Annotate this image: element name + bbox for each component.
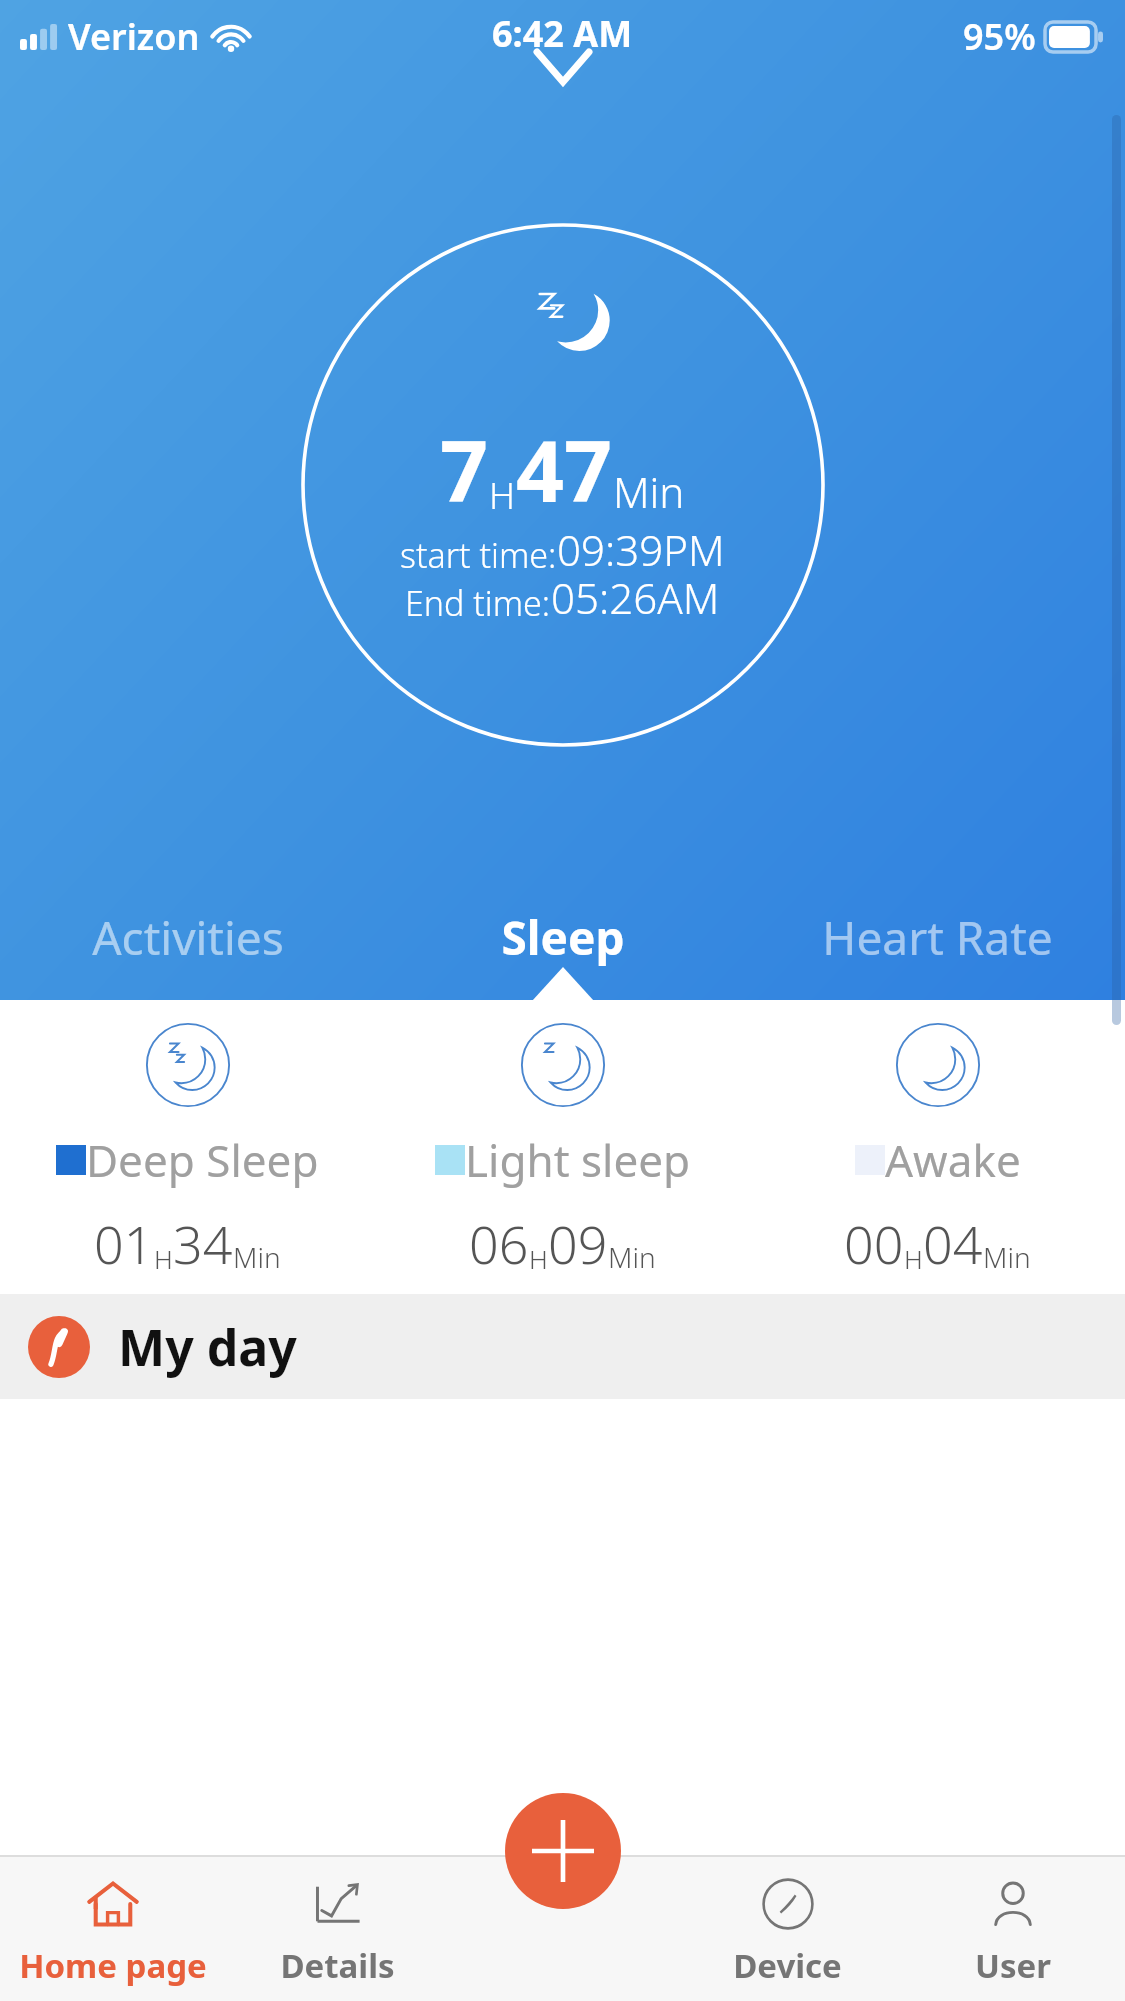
staticText: Sleep (501, 906, 625, 969)
staticText: Awake (885, 1130, 1021, 1190)
staticText: Device (733, 1943, 842, 1988)
staticText: 7 (440, 412, 489, 526)
button[interactable]: Awake (750, 1022, 1125, 1279)
staticText: start time: (400, 532, 557, 578)
staticText: 01 (94, 1208, 154, 1279)
staticText: My day (118, 1313, 297, 1381)
staticText: H (489, 471, 516, 520)
button[interactable]: Deep Sleep (0, 1022, 375, 1279)
staticText: Deep Sleep (86, 1130, 319, 1190)
staticText: 06 (469, 1208, 529, 1279)
staticText: Home page (19, 1943, 207, 1988)
button[interactable]: Heart Rate (750, 893, 1125, 981)
button[interactable]: My day (0, 1294, 1125, 1399)
staticText: Details (280, 1943, 395, 1988)
staticText: H (529, 1241, 548, 1276)
staticText: Min (233, 1238, 281, 1276)
button[interactable]: Collapse (0, 0, 1125, 110)
staticText: 6:42 AM (492, 9, 633, 58)
staticText: User (975, 1943, 1051, 1988)
button[interactable]: Light sleep (375, 1022, 750, 1279)
staticText: Min (608, 1238, 656, 1276)
staticText: Heart Rate (822, 906, 1053, 969)
staticText: 09 (548, 1208, 608, 1279)
staticText: 04 (923, 1208, 983, 1279)
staticText: 05:26AM (551, 569, 720, 626)
staticText: Min (983, 1238, 1031, 1276)
button[interactable]: Details (225, 1855, 450, 2001)
staticText: 34 (173, 1208, 233, 1279)
button[interactable]: Add (505, 1793, 621, 1909)
staticText: Activities (92, 906, 284, 969)
staticText: Light sleep (465, 1130, 691, 1190)
staticText: H (154, 1241, 173, 1276)
staticText: Verizon (68, 12, 200, 61)
staticText: 95% (963, 12, 1036, 61)
staticText: 09:39PM (557, 521, 725, 578)
button[interactable]: Home page (0, 1855, 225, 2001)
staticText: 47 (516, 412, 613, 526)
staticText: Min (613, 463, 685, 520)
button[interactable]: User (900, 1855, 1125, 2001)
staticText: 00 (844, 1208, 904, 1279)
button[interactable]: Activities (0, 893, 375, 981)
staticText: H (904, 1241, 923, 1276)
button[interactable]: Device (675, 1855, 900, 2001)
button[interactable]: Sleep (375, 893, 750, 981)
staticText: End time: (405, 580, 551, 626)
